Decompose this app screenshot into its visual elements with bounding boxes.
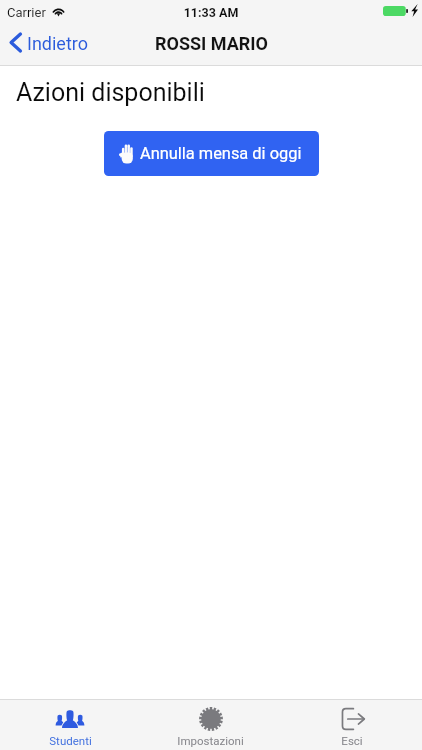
staticText: Studenti: [49, 734, 92, 747]
staticText: Indietro: [27, 33, 88, 54]
button[interactable]: Esci: [281, 699, 422, 750]
staticText: Carrier: [7, 5, 46, 20]
button[interactable]: Indietro: [0, 26, 422, 66]
button[interactable]: Annulla mensa di oggi: [104, 131, 319, 176]
staticText: ROSSI MARIO: [155, 33, 269, 54]
staticText: Impostazioni: [177, 734, 244, 747]
staticText: Azioni disponibili: [16, 78, 205, 107]
staticText: 11:33 AM: [0, 5, 422, 20]
staticText: Annulla mensa di oggi: [140, 144, 302, 163]
button[interactable]: Studenti: [0, 699, 140, 750]
button[interactable]: Impostazioni: [140, 699, 281, 750]
staticText: Esci: [341, 734, 363, 747]
